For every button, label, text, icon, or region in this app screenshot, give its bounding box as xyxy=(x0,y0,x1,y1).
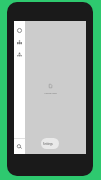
button[interactable]: People xyxy=(14,36,25,48)
button[interactable]: Settings xyxy=(14,140,25,152)
staticText: Settings xyxy=(43,142,53,145)
button[interactable]: Settings xyxy=(41,138,59,149)
button[interactable]: Chat xyxy=(14,48,25,60)
button[interactable]: Home xyxy=(14,24,25,36)
staticText: Nothing Here! xyxy=(44,92,57,95)
